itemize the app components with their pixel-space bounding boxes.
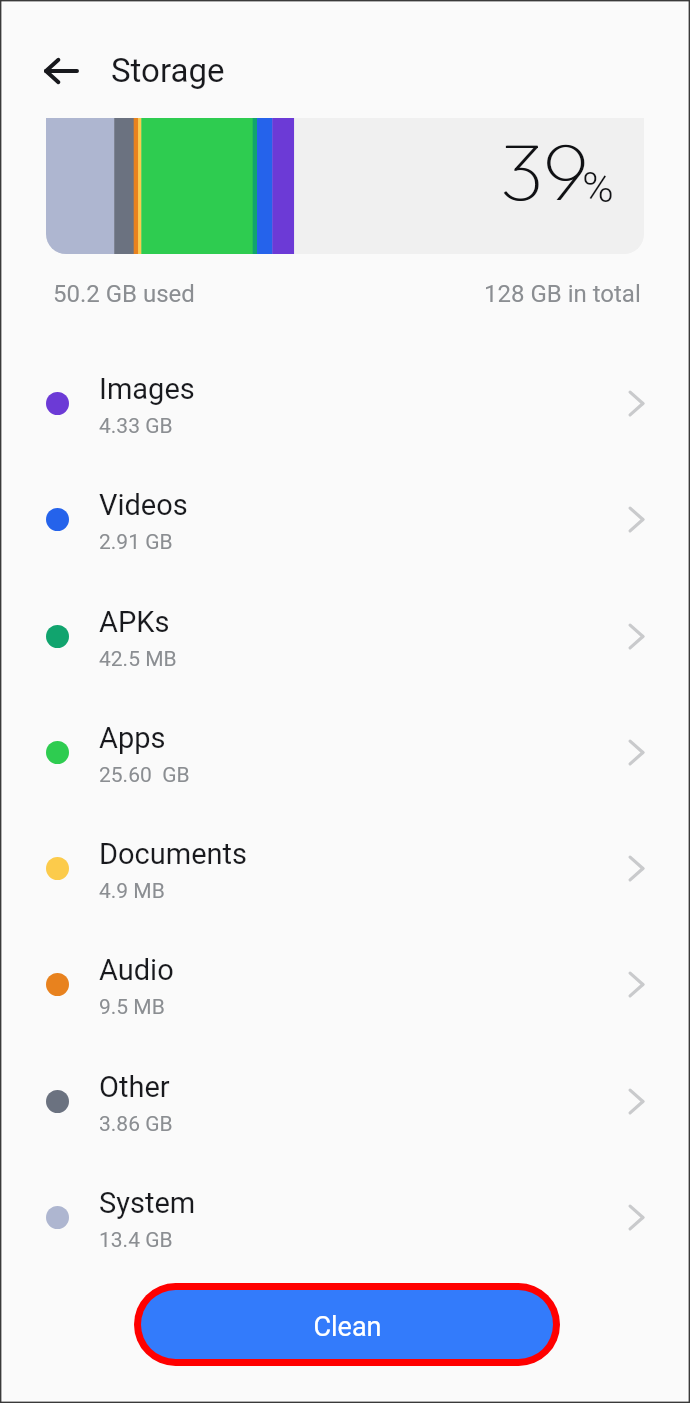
staticText: Clean: [313, 1311, 382, 1343]
staticText: 25.60 GB: [99, 763, 190, 788]
staticText: 4.9 MB: [99, 879, 165, 904]
staticText: 9.5 MB: [99, 995, 165, 1020]
staticText: Audio: [99, 953, 174, 987]
staticText: %: [582, 162, 614, 212]
button[interactable]: System: [0, 1159, 690, 1275]
staticText: 3.86 GB: [99, 1112, 173, 1137]
button[interactable]: Audio: [0, 926, 690, 1042]
staticText: 13.4 GB: [99, 1228, 173, 1253]
staticText: 50.2 GB used: [53, 280, 195, 308]
staticText: Images: [99, 372, 195, 406]
staticText: 39: [501, 120, 589, 221]
button[interactable]: Documents: [0, 810, 690, 926]
staticText: 128 GB in total: [484, 280, 641, 308]
staticText: 42.5 MB: [99, 647, 177, 672]
staticText: 4.33 GB: [99, 414, 173, 439]
button[interactable]: Apps: [0, 694, 690, 810]
button[interactable]: Images: [0, 345, 690, 461]
button[interactable]: APKs: [0, 578, 690, 694]
staticText: 39: [500, 120, 588, 221]
button[interactable]: Clean: [141, 1290, 553, 1359]
staticText: Other: [99, 1070, 170, 1104]
button[interactable]: Back: [28, 39, 92, 103]
staticText: Videos: [99, 488, 188, 522]
staticText: System: [99, 1186, 196, 1220]
staticText: Apps: [99, 721, 166, 755]
staticText: APKs: [99, 605, 170, 639]
button[interactable]: Videos: [0, 461, 690, 577]
staticText: Storage: [111, 51, 225, 90]
button[interactable]: Other: [0, 1043, 690, 1159]
staticText: 2.91 GB: [99, 530, 173, 555]
staticText: Documents: [99, 837, 248, 871]
